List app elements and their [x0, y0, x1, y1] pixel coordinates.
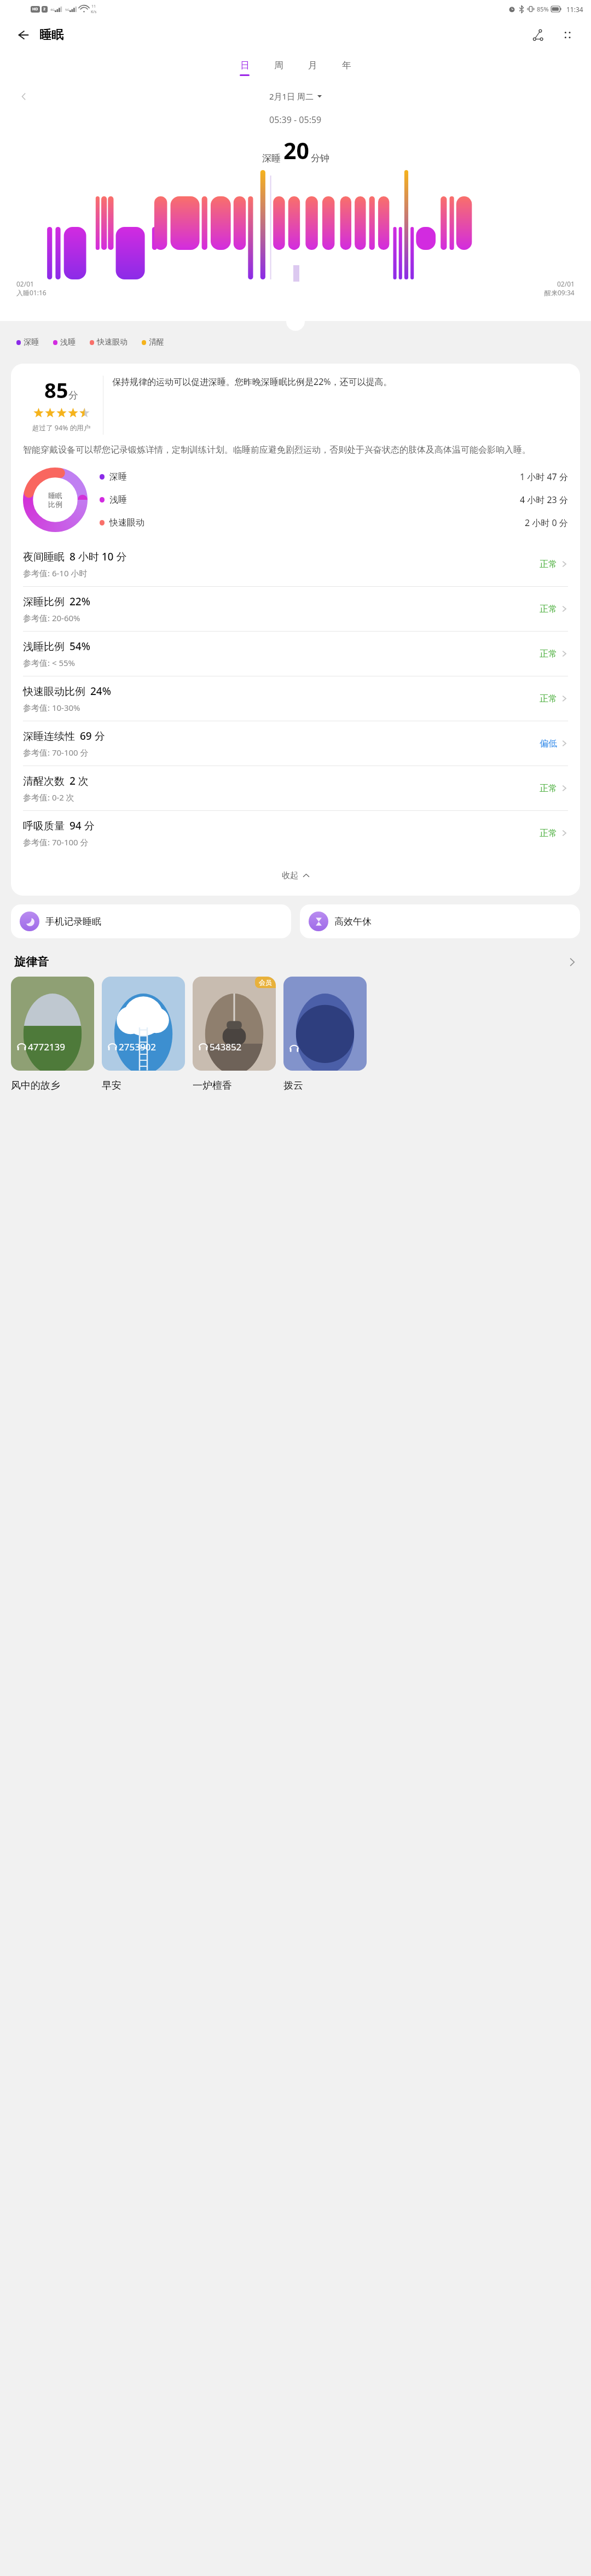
staticText: 54% [69, 639, 90, 653]
staticText: 2753902 [119, 1041, 157, 1053]
staticText: 参考值: 70-100 分 [23, 837, 89, 848]
button[interactable]: Previous day [14, 87, 33, 106]
staticText: 22% [69, 594, 90, 609]
button[interactable]: 手机记录睡眠 [11, 904, 291, 938]
staticText: 02/01 [16, 279, 34, 288]
staticText: 深睡连续性 [23, 730, 75, 743]
staticText: 正常 [540, 559, 557, 570]
staticText: 参考值: 20-60% [23, 612, 80, 623]
staticText: 4G [50, 8, 55, 12]
button[interactable]: 4772139 [11, 977, 94, 1071]
button[interactable]: 月 [296, 52, 329, 84]
button[interactable]: 呼吸质量 [11, 811, 580, 855]
staticText: 呼吸质量 [23, 820, 65, 833]
staticText: 一炉檀香 [193, 1079, 232, 1092]
staticText: 正常 [540, 783, 557, 794]
staticText: 正常 [540, 649, 557, 659]
staticText: 清醒次数 [23, 775, 65, 788]
button[interactable]: More options [556, 24, 579, 46]
staticText: 早安 [102, 1079, 121, 1092]
staticText: 4772139 [28, 1041, 66, 1053]
staticText: 2 [43, 7, 46, 12]
staticText: 偏低 [540, 738, 557, 749]
staticText: 11:34 [566, 5, 583, 14]
staticText: 85% [537, 5, 549, 13]
staticText: 快速眼动比例 [23, 685, 85, 698]
button[interactable]: 快速眼动比例 [11, 676, 580, 721]
staticText: 深睡 [262, 153, 281, 164]
staticText: 4 小时 23 分 [520, 494, 568, 506]
button[interactable]: 年 [329, 52, 363, 84]
staticText: 543852 [210, 1041, 242, 1053]
button[interactable]: 旋律音 [0, 947, 591, 977]
staticText: 浅睡 [109, 494, 127, 505]
staticText: 智能穿戴设备可以帮您记录锻炼详情，定制训练计划。临睡前应避免剧烈运动，否则处于兴… [23, 445, 531, 455]
staticText: 参考值: 0-2 次 [23, 792, 74, 803]
staticText: 深睡 [109, 471, 127, 482]
button[interactable]: Share [526, 24, 549, 46]
staticText: 05:39 - 05:59 [269, 114, 322, 126]
staticText: 醒来09:34 [544, 288, 575, 297]
staticText: 拨云 [283, 1079, 303, 1092]
staticText: 5G [65, 8, 69, 12]
staticText: 2 次 [69, 774, 89, 788]
button[interactable]: 日 [228, 52, 262, 84]
button[interactable]: 清醒次数 [11, 766, 580, 811]
button[interactable]: 2月1日 周二 [269, 91, 322, 102]
staticText: 85 [44, 376, 68, 404]
staticText: 浅睡比例 [23, 640, 65, 653]
staticText: 深睡 [24, 337, 39, 347]
staticText: 高效午休 [334, 916, 372, 927]
staticText: 快速眼动 [97, 337, 128, 347]
staticText: 02/01 [557, 279, 575, 288]
staticText: 收起 [282, 871, 298, 881]
staticText: 夜间睡眠 [23, 551, 65, 564]
button[interactable] [283, 977, 367, 1071]
staticText: 保持规律的运动可以促进深睡。您昨晚深睡眠比例是22%，还可以提高。 [112, 376, 392, 388]
staticText: 8 小时 10 分 [69, 550, 127, 564]
button[interactable]: Back [12, 24, 34, 46]
staticText: 风中的故乡 [11, 1079, 60, 1092]
staticText: 超过了 94% 的用户 [32, 423, 91, 433]
staticText: 浅睡 [60, 337, 76, 347]
staticText: 会员 [259, 978, 272, 986]
staticText: 周 [274, 60, 283, 71]
staticText: 参考值: 6-10 小时 [23, 568, 88, 579]
staticText: 清醒 [149, 337, 164, 347]
staticText: 分钟 [311, 153, 329, 164]
staticText: 24% [90, 684, 111, 698]
staticText: 20 [283, 135, 309, 166]
staticText: 2月1日 周二 [269, 91, 314, 102]
button[interactable]: 深睡连续性 [11, 721, 580, 766]
staticText: 入睡01:16 [16, 288, 47, 297]
staticText: 年 [342, 60, 351, 71]
staticText: 月 [308, 60, 317, 71]
staticText: 睡眠 [39, 27, 63, 43]
staticText: 69 分 [80, 729, 105, 743]
staticText: 参考值: 70-100 分 [23, 747, 89, 758]
staticText: 比例 [48, 500, 62, 509]
staticText: 参考值: 10-30% [23, 702, 80, 713]
staticText: 11 [91, 4, 96, 9]
button[interactable]: 会员 [193, 977, 276, 1071]
button[interactable]: 收起 [11, 855, 580, 896]
button[interactable]: 高效午休 [300, 904, 580, 938]
staticText: 日 [240, 60, 250, 71]
staticText: 手机记录睡眠 [45, 916, 101, 927]
staticText: 1 小时 47 分 [520, 471, 568, 483]
staticText: 快速眼动 [109, 517, 144, 528]
staticText: 94 分 [69, 819, 95, 833]
button[interactable]: 夜间睡眠 [11, 542, 580, 587]
button[interactable]: 周 [262, 52, 296, 84]
staticText: 正常 [540, 828, 557, 839]
staticText: 分 [68, 389, 78, 402]
button[interactable]: 浅睡比例 [11, 632, 580, 676]
staticText: 旋律音 [14, 955, 49, 969]
staticText: 参考值: < 55% [23, 657, 76, 668]
staticText: 睡眠 [48, 491, 62, 500]
staticText: 正常 [540, 693, 557, 704]
staticText: 正常 [540, 604, 557, 615]
staticText: 2 小时 0 分 [525, 517, 568, 529]
button[interactable]: 2753902 [102, 977, 185, 1071]
button[interactable]: 深睡比例 [11, 587, 580, 632]
